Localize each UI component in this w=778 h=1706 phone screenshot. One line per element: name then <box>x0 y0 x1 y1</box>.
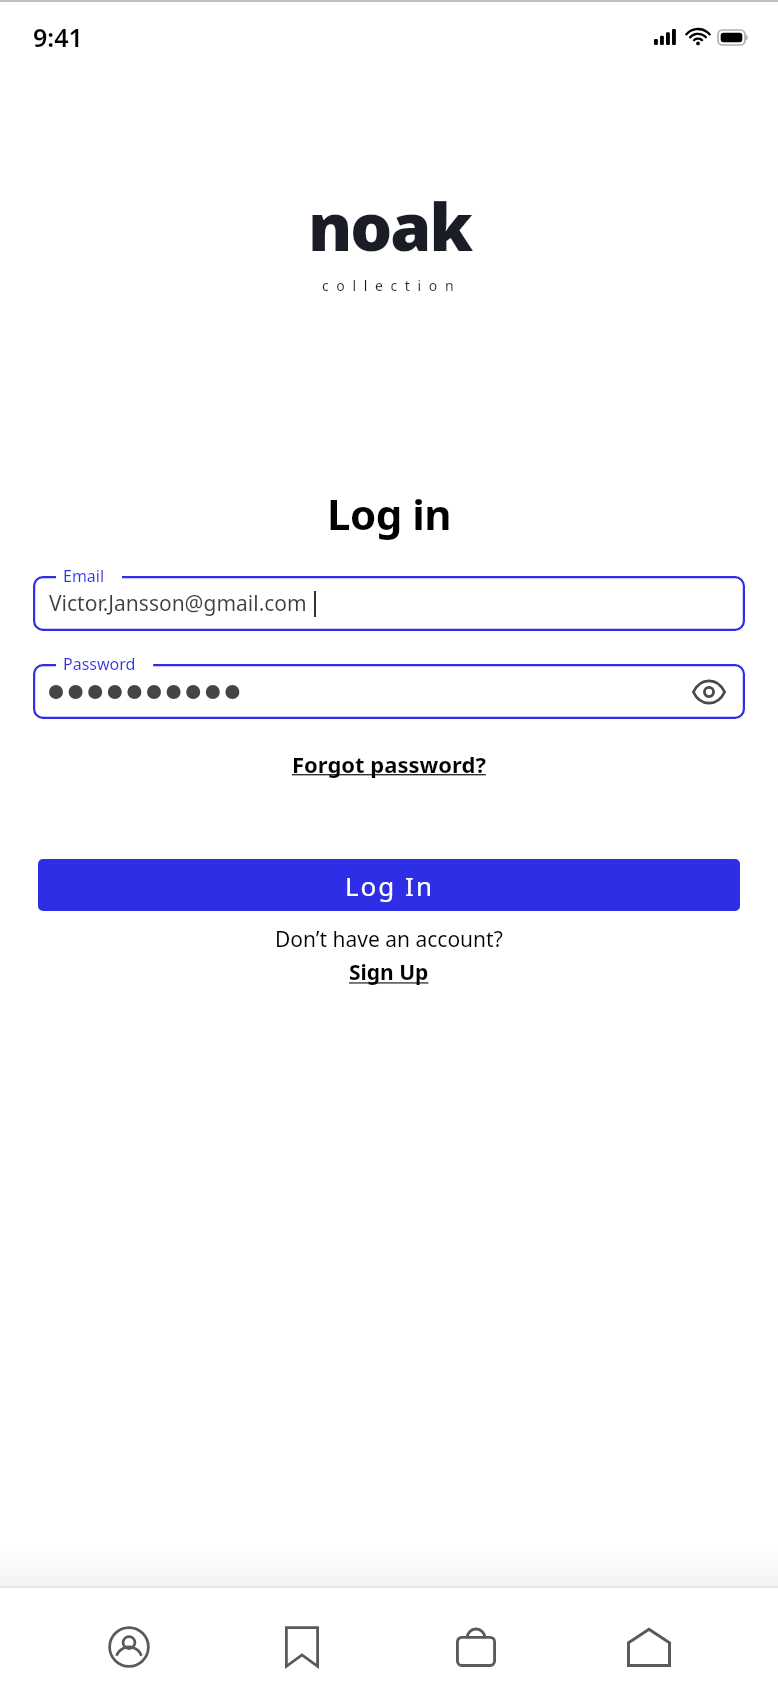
staticText: Password <box>63 653 136 675</box>
staticText: Sign Up <box>349 958 429 987</box>
staticText: Email <box>63 565 105 587</box>
staticText: Forgot password? <box>292 749 486 779</box>
button[interactable]: Forgot password? <box>284 745 494 783</box>
staticText: Log In <box>345 868 434 903</box>
staticText: c o l l e c t i o n <box>322 276 456 295</box>
button[interactable]: Email <box>33 576 745 631</box>
button[interactable]: Bag <box>431 1602 521 1692</box>
button[interactable]: Show password <box>685 668 733 716</box>
button[interactable]: Home <box>604 1602 694 1692</box>
staticText: 9:41 <box>33 20 83 54</box>
staticText: noak <box>308 180 471 270</box>
staticText: Don’t have an account? <box>275 925 503 954</box>
button[interactable]: Account <box>84 1602 174 1692</box>
staticText: Log in <box>327 485 452 542</box>
button[interactable]: Log In <box>38 859 740 911</box>
button[interactable]: Saved <box>257 1602 347 1692</box>
button[interactable]: Sign Up <box>341 956 437 989</box>
button[interactable]: Password <box>33 664 745 719</box>
staticText: Victor.Jansson@gmail.com <box>49 589 307 618</box>
